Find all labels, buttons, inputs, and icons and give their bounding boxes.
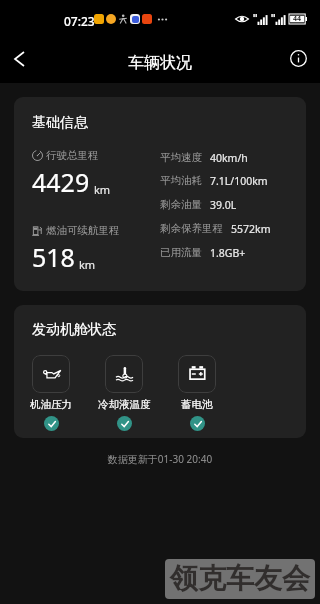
staticText: 39.0L: [210, 198, 237, 212]
staticText: 4429: [32, 165, 90, 199]
staticText: 蓄电池: [181, 398, 213, 411]
staticText: 机油压力: [30, 398, 72, 411]
staticText: 车辆状况: [128, 53, 192, 73]
staticText: 518: [32, 240, 75, 274]
staticText: km: [94, 182, 111, 197]
staticText: 40km/h: [210, 151, 248, 165]
staticText: 剩余保养里程: [160, 222, 223, 235]
staticText: 行驶总里程: [46, 149, 99, 162]
staticText: 平均速度: [160, 151, 202, 164]
button[interactable]: 冷却液温度: [105, 355, 143, 431]
button[interactable]: 蓄电池: [178, 355, 216, 431]
staticText: 发动机舱状态: [32, 321, 116, 339]
staticText: 已用流量: [160, 246, 202, 259]
staticText: 燃油可续航里程: [46, 224, 120, 237]
staticText: 07:23: [64, 13, 95, 29]
staticText: 5572km: [231, 222, 271, 236]
staticText: 7.1L/100km: [210, 174, 268, 188]
button[interactable]: 机油压力: [32, 355, 70, 431]
staticText: 领克车友会: [170, 561, 310, 596]
staticText: 1.8GB+: [210, 246, 246, 260]
staticText: 44: [293, 14, 302, 24]
staticText: 基础信息: [32, 114, 88, 132]
staticText: 剩余油量: [160, 198, 202, 211]
staticText: 平均油耗: [160, 174, 202, 187]
staticText: 数据更新于01-30 20:40: [0, 452, 320, 466]
staticText: km: [79, 257, 96, 272]
staticText: 冷却液温度: [98, 398, 151, 411]
button[interactable]: Back: [1, 41, 37, 77]
button[interactable]: Info: [283, 43, 313, 73]
